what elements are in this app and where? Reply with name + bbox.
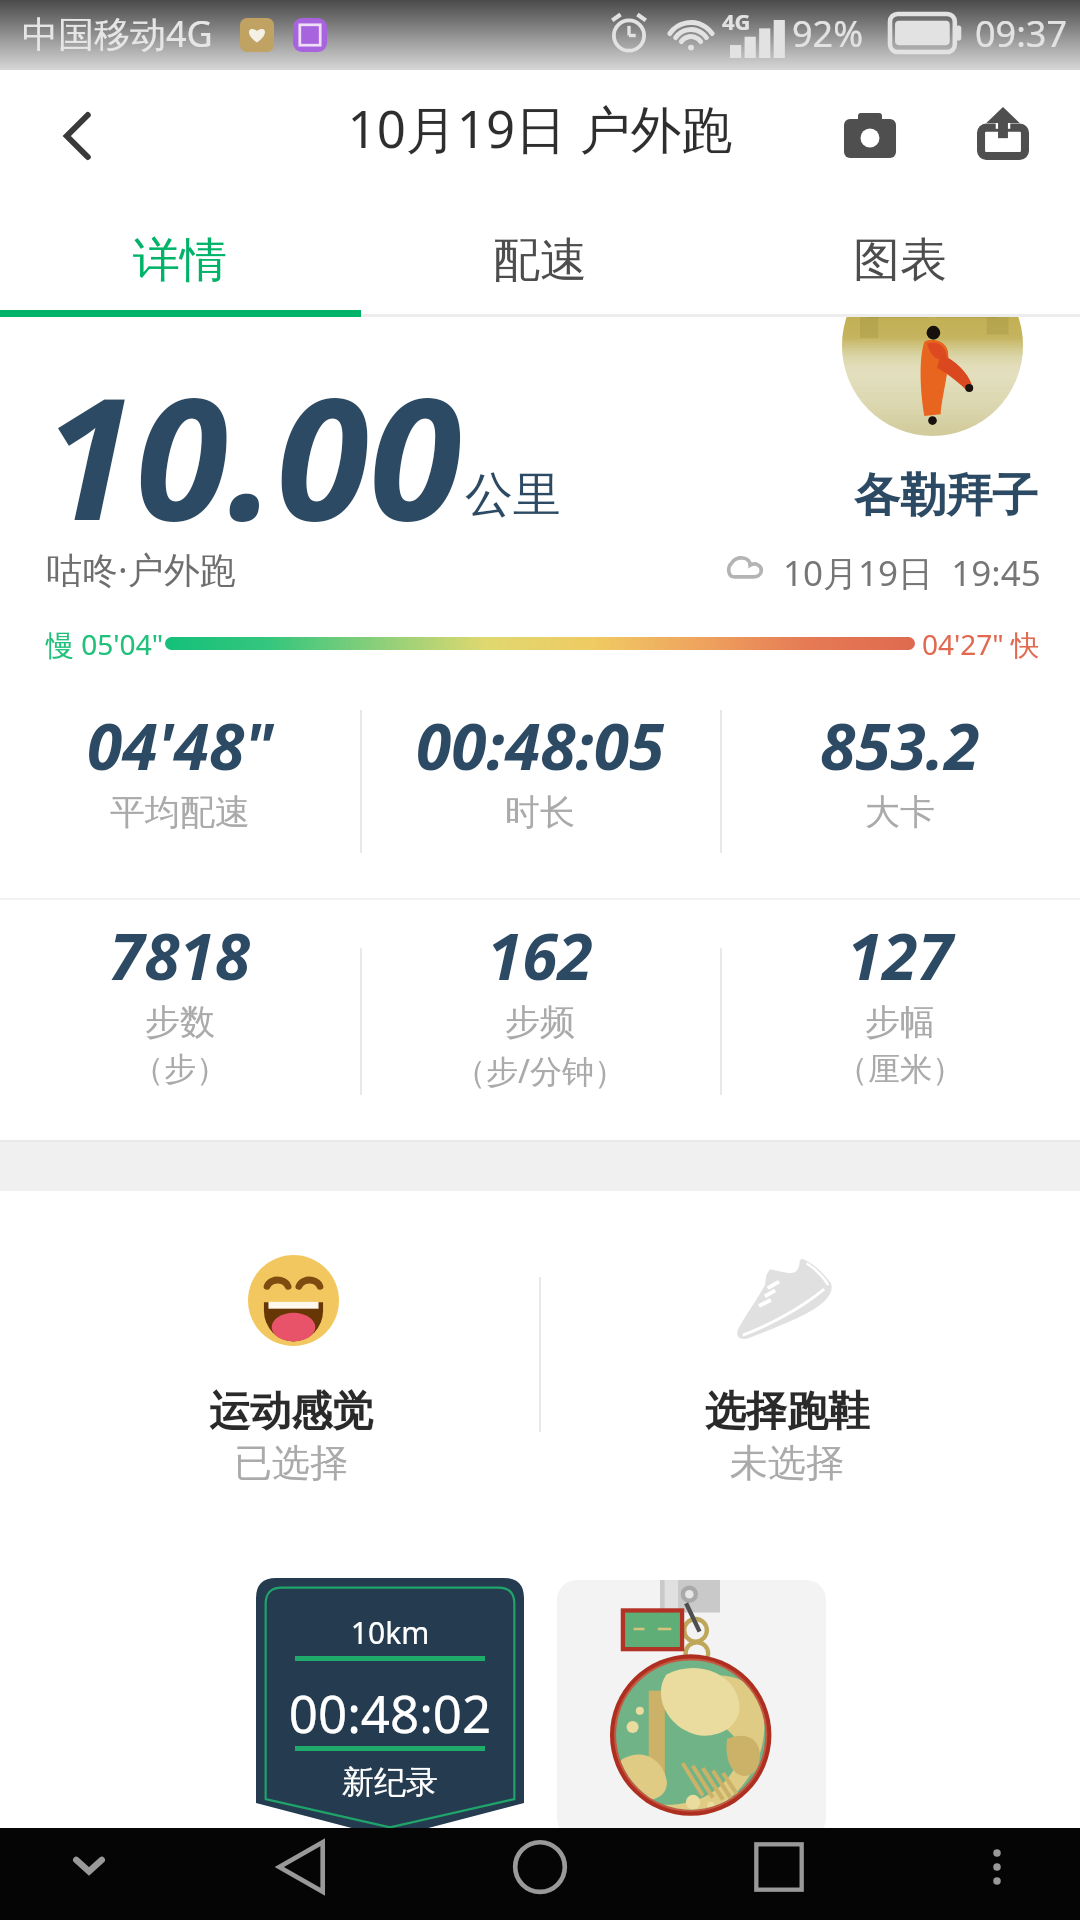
staticText: 00:48:02: [256, 1678, 524, 1747]
staticText: 162: [487, 912, 593, 999]
staticText: 4G: [722, 6, 751, 36]
staticText: （厘米）: [836, 1049, 964, 1089]
button[interactable]: 图表: [720, 200, 1080, 317]
button[interactable]: More options: [972, 1842, 1022, 1892]
button[interactable]: 7818: [0, 912, 360, 1083]
staticText: 步数: [145, 1000, 215, 1044]
button[interactable]: 04'48": [0, 702, 360, 833]
staticText: 公里: [465, 465, 561, 525]
staticText: 10.00: [43, 340, 462, 569]
staticText: 127: [847, 912, 953, 999]
staticText: 已选择: [43, 1439, 539, 1487]
staticText: 853.2: [820, 702, 980, 789]
button[interactable]: 00:48:05: [360, 702, 720, 833]
staticText: 10月19日 户外跑: [0, 93, 1080, 163]
staticText: 配速: [493, 231, 587, 290]
staticText: （步/分钟）: [454, 1049, 626, 1093]
button[interactable]: [557, 1580, 826, 1838]
button[interactable]: 运动感觉: [43, 1191, 539, 1491]
staticText: 新纪录: [256, 1762, 524, 1802]
staticText: 10月19日 19:45: [783, 549, 1041, 597]
button[interactable]: Home: [509, 1836, 571, 1898]
button[interactable]: 选择跑鞋: [539, 1191, 1035, 1491]
staticText: 中国移动4G: [22, 9, 213, 58]
staticText: 时长: [505, 790, 575, 834]
button[interactable]: 10km: [256, 1578, 524, 1838]
staticText: 大卡: [865, 790, 935, 834]
staticText: 慢 05'04": [46, 625, 164, 663]
button[interactable]: Back: [270, 1836, 332, 1898]
button[interactable]: Back: [43, 101, 113, 171]
button[interactable]: 162: [360, 912, 720, 1087]
staticText: 选择跑鞋: [539, 1386, 1035, 1438]
staticText: 咕咚·户外跑: [46, 545, 236, 594]
staticText: 09:37: [975, 9, 1068, 58]
button[interactable]: User avatar: [842, 317, 1023, 436]
staticText: 图表: [853, 231, 947, 290]
staticText: 10km: [256, 1612, 524, 1653]
staticText: 04'27" 快: [922, 625, 1040, 663]
staticText: 未选择: [539, 1439, 1035, 1487]
button[interactable]: 853.2: [720, 702, 1080, 833]
staticText: 00:48:05: [416, 702, 665, 789]
staticText: （步）: [132, 1049, 228, 1089]
staticText: 平均配速: [110, 790, 250, 834]
staticText: 步幅: [865, 1000, 935, 1044]
button[interactable]: 127: [720, 912, 1080, 1083]
staticText: 步频: [505, 1000, 575, 1044]
button[interactable]: 详情: [0, 200, 360, 317]
staticText: 运动感觉: [43, 1386, 539, 1438]
button[interactable]: Hide keyboard: [57, 1833, 121, 1897]
staticText: 92%: [792, 9, 864, 58]
button[interactable]: Share: [977, 108, 1029, 160]
staticText: 7818: [109, 912, 251, 999]
staticText: 各勒拜子: [854, 467, 1038, 525]
button[interactable]: 配速: [360, 200, 720, 317]
button[interactable]: Recents: [752, 1840, 806, 1894]
staticText: 04'48": [87, 702, 274, 789]
staticText: 详情: [133, 231, 227, 290]
button[interactable]: Camera: [841, 106, 901, 166]
